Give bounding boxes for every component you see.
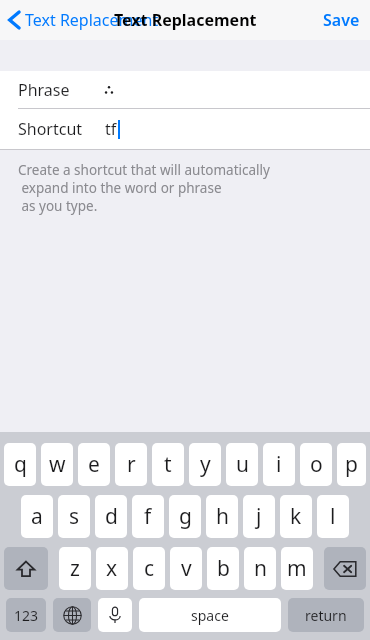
staticText: x [106, 554, 118, 583]
staticText: v [181, 554, 192, 583]
button[interactable]: l [317, 495, 349, 538]
button[interactable]: k [280, 495, 312, 538]
staticText: y [200, 450, 211, 479]
button[interactable]: o [300, 443, 332, 486]
staticText: return [305, 606, 347, 625]
staticText: d [105, 502, 118, 531]
button[interactable]: a [21, 495, 53, 538]
staticText: Text Replacement [25, 9, 159, 31]
button[interactable]: r [115, 443, 147, 486]
staticText: h [216, 502, 229, 531]
button[interactable]: n [244, 547, 276, 590]
staticText: Create a shortcut that will automaticall… [18, 161, 270, 179]
button[interactable]: s [58, 495, 90, 538]
button[interactable]: Text Replacement [9, 0, 159, 40]
staticText: q [14, 450, 27, 479]
staticText: 123 [14, 606, 39, 625]
button[interactable]: d [95, 495, 127, 538]
button[interactable]: space [139, 598, 281, 632]
staticText: as you type. [18, 197, 98, 215]
button[interactable]: Backspace [324, 547, 366, 590]
button[interactable]: v [170, 547, 202, 590]
staticText: o [310, 450, 323, 479]
button[interactable]: j [243, 495, 275, 538]
staticText: u [236, 450, 249, 479]
staticText: p [345, 450, 358, 479]
staticText: m [287, 554, 307, 583]
button[interactable]: Shortcut [0, 109, 370, 149]
button[interactable]: y [189, 443, 221, 486]
staticText: c [144, 554, 155, 583]
staticText: Shortcut [18, 118, 83, 140]
button[interactable]: q [4, 443, 36, 486]
button[interactable]: Dictation [98, 598, 132, 632]
staticText: l [330, 502, 336, 531]
button[interactable]: Next keyboard [53, 598, 91, 632]
staticText: t [164, 450, 172, 479]
staticText: r [127, 450, 136, 479]
button[interactable]: t [152, 443, 184, 486]
staticText: expand into the word or phrase [18, 179, 222, 197]
staticText: space [191, 606, 229, 625]
staticText: g [179, 502, 192, 531]
button[interactable]: Phrase [0, 71, 370, 108]
staticText: Phrase [18, 79, 70, 101]
button[interactable]: h [206, 495, 238, 538]
staticText: a [31, 502, 43, 531]
button[interactable]: m [281, 547, 313, 590]
staticText: f [144, 502, 152, 531]
button[interactable]: z [59, 547, 91, 590]
button[interactable]: x [96, 547, 128, 590]
staticText: i [276, 450, 282, 479]
staticText: w [49, 450, 66, 479]
button[interactable]: e [78, 443, 110, 486]
staticText: Text Replacement [114, 9, 257, 31]
button[interactable]: p [337, 443, 366, 486]
staticText: z [70, 554, 80, 583]
button[interactable]: w [41, 443, 73, 486]
button[interactable]: Shift [4, 547, 48, 590]
button[interactable]: i [263, 443, 295, 486]
button[interactable]: f [132, 495, 164, 538]
staticText: j [256, 502, 262, 531]
button[interactable]: return [288, 598, 364, 632]
staticText: b [217, 554, 230, 583]
staticText: Save [323, 9, 360, 31]
button[interactable]: g [169, 495, 201, 538]
staticText: s [69, 502, 80, 531]
staticText: n [254, 554, 267, 583]
staticText: tf [105, 118, 117, 140]
staticText: e [88, 450, 100, 479]
button[interactable]: u [226, 443, 258, 486]
button[interactable]: 123 [6, 598, 46, 632]
button[interactable]: b [207, 547, 239, 590]
button[interactable]: Save [323, 0, 360, 40]
button[interactable]: c [133, 547, 165, 590]
staticText: k [290, 502, 302, 531]
